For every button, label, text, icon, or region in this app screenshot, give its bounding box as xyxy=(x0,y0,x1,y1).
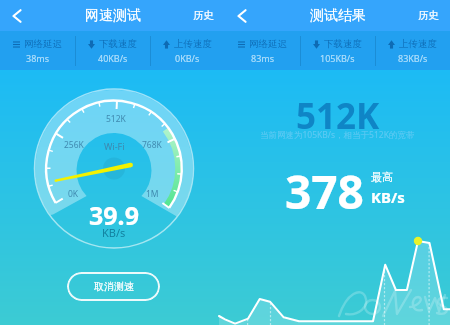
staticText: 105KB/s xyxy=(320,52,355,64)
staticText: 最高 xyxy=(371,170,393,184)
button[interactable]: 上传速度 xyxy=(150,31,225,70)
button[interactable]: 历史 xyxy=(418,0,450,31)
button[interactable]: 上传速度 xyxy=(375,31,450,70)
staticText: 0KB/s xyxy=(175,52,200,64)
staticText: 83KB/s xyxy=(398,52,428,64)
button[interactable]: 取消测速 xyxy=(67,272,160,301)
staticText: 下载速度 xyxy=(324,38,362,50)
staticText: KB/s xyxy=(371,187,405,207)
button[interactable]: 网络延迟 xyxy=(0,31,75,70)
staticText: KB/s xyxy=(102,225,126,240)
staticText: 网速测试 xyxy=(85,7,141,25)
staticText: 1M xyxy=(146,188,159,200)
staticText: 下载速度 xyxy=(99,38,137,50)
staticText: 39.9 xyxy=(89,198,139,232)
staticText: 40KB/s xyxy=(98,52,128,64)
button[interactable]: Back xyxy=(225,0,259,31)
staticText: 测试结果 xyxy=(310,7,366,25)
staticText: 历史 xyxy=(418,9,439,22)
staticText: 378 xyxy=(285,160,364,223)
button[interactable]: 下载速度 xyxy=(75,31,150,70)
staticText: 512K xyxy=(296,92,380,140)
staticText: 256K xyxy=(64,139,84,151)
button[interactable]: 历史 xyxy=(193,0,225,31)
staticText: 当前网速为105KB/s，相当于512K的宽带 xyxy=(260,129,415,141)
button[interactable]: 网络延迟 xyxy=(225,31,300,70)
staticText: 512K xyxy=(106,113,126,125)
staticText: 上传速度 xyxy=(399,38,437,50)
staticText: 历史 xyxy=(193,9,214,22)
staticText: 0K xyxy=(68,188,79,200)
staticText: 38ms xyxy=(26,52,50,64)
staticText: 上传速度 xyxy=(174,38,212,50)
button[interactable]: Back xyxy=(0,0,34,31)
staticText: 网络延迟 xyxy=(24,38,62,50)
staticText: 网络延迟 xyxy=(249,38,287,50)
staticText: Wi-Fi xyxy=(104,140,125,152)
button[interactable]: 下载速度 xyxy=(300,31,375,70)
staticText: 取消测速 xyxy=(94,280,134,293)
staticText: 768K xyxy=(142,139,162,151)
staticText: 83ms xyxy=(251,52,275,64)
